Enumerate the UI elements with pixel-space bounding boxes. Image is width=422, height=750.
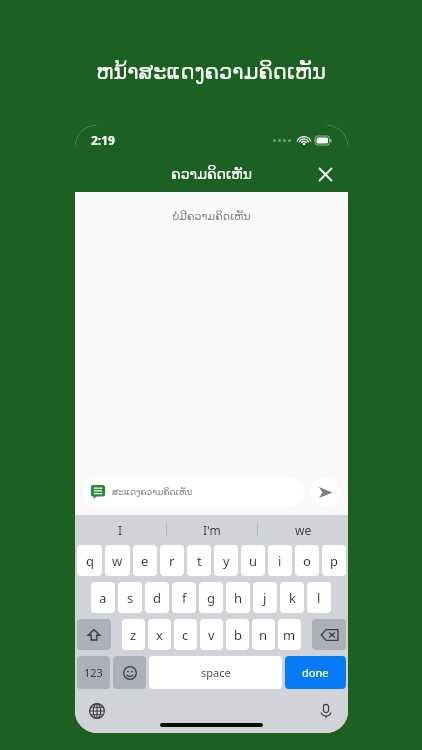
button[interactable]: r bbox=[160, 545, 184, 576]
staticText: ຫນ້າສະແດງຄວາມຄິດເຫັນ bbox=[0, 60, 422, 84]
staticText: we bbox=[295, 522, 312, 538]
button[interactable]: l bbox=[307, 582, 331, 613]
button[interactable]: I'm bbox=[167, 515, 257, 545]
staticText: h bbox=[234, 589, 243, 607]
button[interactable]: z bbox=[122, 619, 145, 650]
button[interactable]: i bbox=[268, 545, 292, 576]
button[interactable]: s bbox=[118, 582, 142, 613]
staticText: g bbox=[207, 589, 215, 607]
staticText: y bbox=[223, 552, 230, 570]
staticText: I'm bbox=[203, 522, 221, 538]
button[interactable]: Shift bbox=[77, 619, 111, 650]
staticText: l bbox=[317, 589, 321, 607]
staticText: r bbox=[169, 552, 175, 570]
button[interactable]: v bbox=[200, 619, 223, 650]
button[interactable]: Close bbox=[312, 161, 338, 187]
button[interactable]: Emoji bbox=[113, 656, 146, 689]
button[interactable]: q bbox=[77, 545, 102, 576]
button[interactable]: n bbox=[252, 619, 275, 650]
button[interactable]: w bbox=[105, 545, 130, 576]
staticText: space bbox=[201, 665, 231, 680]
button[interactable]: o bbox=[295, 545, 319, 576]
button[interactable]: ສະແດງຄວາມຄິດເຫັນ bbox=[91, 477, 296, 507]
staticText: v bbox=[208, 626, 215, 644]
button[interactable]: we bbox=[258, 515, 348, 545]
button[interactable]: a bbox=[91, 582, 115, 613]
button[interactable]: f bbox=[172, 582, 196, 613]
button[interactable]: h bbox=[226, 582, 250, 613]
button[interactable]: x bbox=[148, 619, 171, 650]
button[interactable]: Send bbox=[310, 477, 340, 507]
staticText: 2:19 bbox=[91, 132, 115, 148]
staticText: k bbox=[289, 589, 296, 607]
button[interactable]: space bbox=[149, 656, 282, 689]
button[interactable]: u bbox=[241, 545, 265, 576]
staticText: 123 bbox=[84, 665, 103, 680]
staticText: i bbox=[278, 552, 282, 570]
staticText: c bbox=[182, 626, 189, 644]
button[interactable]: g bbox=[199, 582, 223, 613]
staticText: done bbox=[302, 665, 329, 680]
button[interactable]: d bbox=[145, 582, 169, 613]
staticText: p bbox=[330, 552, 338, 570]
staticText: ບໍ່ມີຄວາມຄິດເຫັນ bbox=[75, 210, 348, 223]
button[interactable]: p bbox=[322, 545, 346, 576]
button[interactable]: I bbox=[75, 515, 166, 545]
staticText: o bbox=[303, 552, 311, 570]
button[interactable]: Voice input bbox=[314, 699, 338, 723]
staticText: t bbox=[197, 552, 202, 570]
staticText: b bbox=[234, 626, 242, 644]
staticText: n bbox=[259, 626, 268, 644]
button[interactable]: b bbox=[226, 619, 249, 650]
staticText: e bbox=[141, 552, 149, 570]
staticText: x bbox=[156, 626, 163, 644]
staticText: u bbox=[249, 552, 258, 570]
button[interactable]: c bbox=[174, 619, 197, 650]
button[interactable]: done bbox=[285, 656, 346, 689]
staticText: a bbox=[99, 589, 107, 607]
button[interactable]: Backspace bbox=[312, 619, 346, 650]
staticText: d bbox=[153, 589, 161, 607]
button[interactable]: Change keyboard bbox=[85, 699, 109, 723]
staticText: ຄວາມຄິດເຫັນ bbox=[171, 166, 252, 182]
staticText: w bbox=[112, 552, 123, 570]
staticText: I bbox=[118, 522, 123, 538]
staticText: ສະແດງຄວາມຄິດເຫັນ bbox=[112, 487, 193, 497]
button[interactable]: k bbox=[280, 582, 304, 613]
staticText: z bbox=[130, 626, 137, 644]
staticText: f bbox=[182, 589, 187, 607]
button[interactable]: 123 bbox=[77, 656, 110, 689]
staticText: m bbox=[283, 626, 296, 644]
button[interactable]: e bbox=[133, 545, 157, 576]
button[interactable]: j bbox=[253, 582, 277, 613]
button[interactable]: m bbox=[278, 619, 301, 650]
staticText: s bbox=[127, 589, 134, 607]
button[interactable]: t bbox=[187, 545, 211, 576]
button[interactable]: y bbox=[214, 545, 238, 576]
staticText: j bbox=[263, 589, 267, 607]
staticText: q bbox=[86, 552, 94, 570]
